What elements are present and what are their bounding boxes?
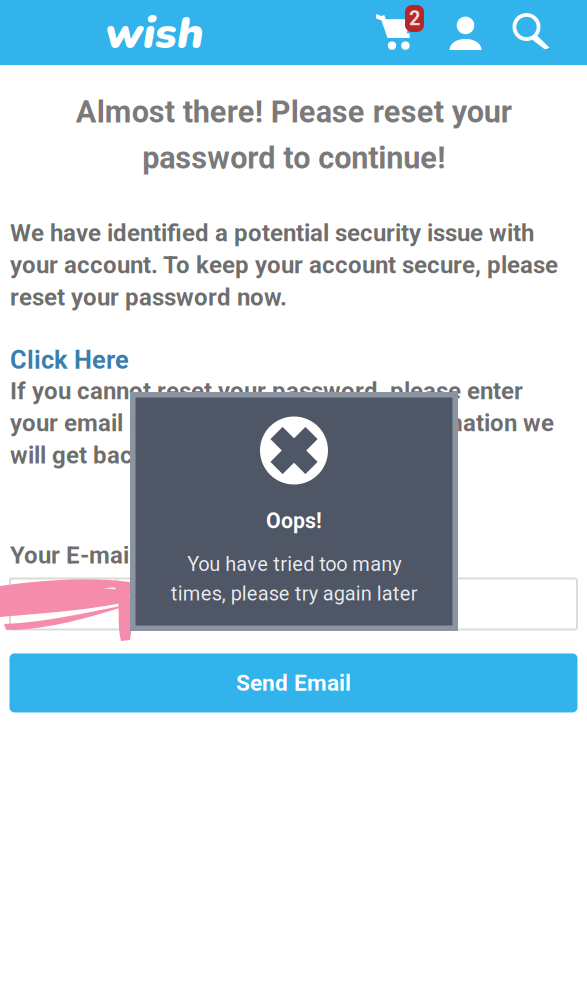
staticText: Your E-mail	[10, 541, 135, 569]
staticText: 2	[409, 7, 420, 30]
button[interactable]: Account	[445, 16, 486, 64]
button[interactable]: Wish home	[105, 11, 205, 56]
staticText: If you cannot reset your password, pleas…	[10, 377, 554, 469]
staticText: Click Here	[10, 345, 129, 375]
button[interactable]: Click Here	[10, 345, 129, 375]
staticText: wish	[105, 3, 204, 63]
button[interactable]: Cart, 2 items	[376, 0, 426, 52]
staticText: Oops!	[266, 508, 322, 533]
staticText: You have tried too many times, please tr…	[170, 552, 417, 605]
staticText: Send Email	[236, 670, 351, 696]
staticText: We have identified a potential security …	[10, 219, 558, 311]
staticText: Almost there! Please reset your password…	[75, 94, 511, 176]
button[interactable]: Send Email	[9, 653, 577, 712]
button[interactable]: Search	[510, 13, 552, 61]
